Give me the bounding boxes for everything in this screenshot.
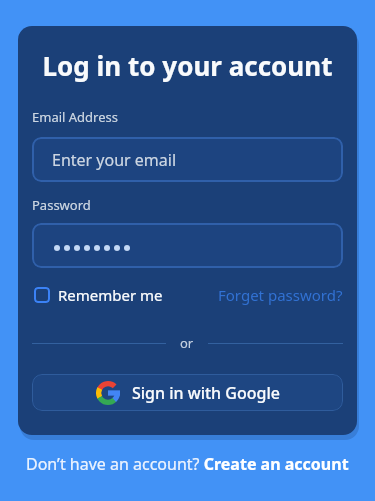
staticText: Log in to your account: [18, 48, 357, 83]
button[interactable]: [32, 223, 343, 268]
staticText: Email Address: [32, 108, 118, 126]
button[interactable]: Forget password?: [218, 285, 343, 305]
button[interactable]: Remember me: [32, 285, 163, 305]
staticText: Password: [32, 196, 91, 214]
staticText: Enter your email: [52, 149, 177, 171]
button[interactable]: Enter your email: [32, 137, 343, 182]
staticText: Remember me: [58, 285, 163, 305]
staticText: Don’t have an account? Create an account: [26, 453, 349, 475]
staticText: or: [180, 334, 194, 352]
staticText: Sign in with Google: [132, 382, 280, 404]
button[interactable]: Don’t have an account? Create an account: [0, 453, 375, 475]
button[interactable]: Sign in with Google: [32, 374, 343, 411]
